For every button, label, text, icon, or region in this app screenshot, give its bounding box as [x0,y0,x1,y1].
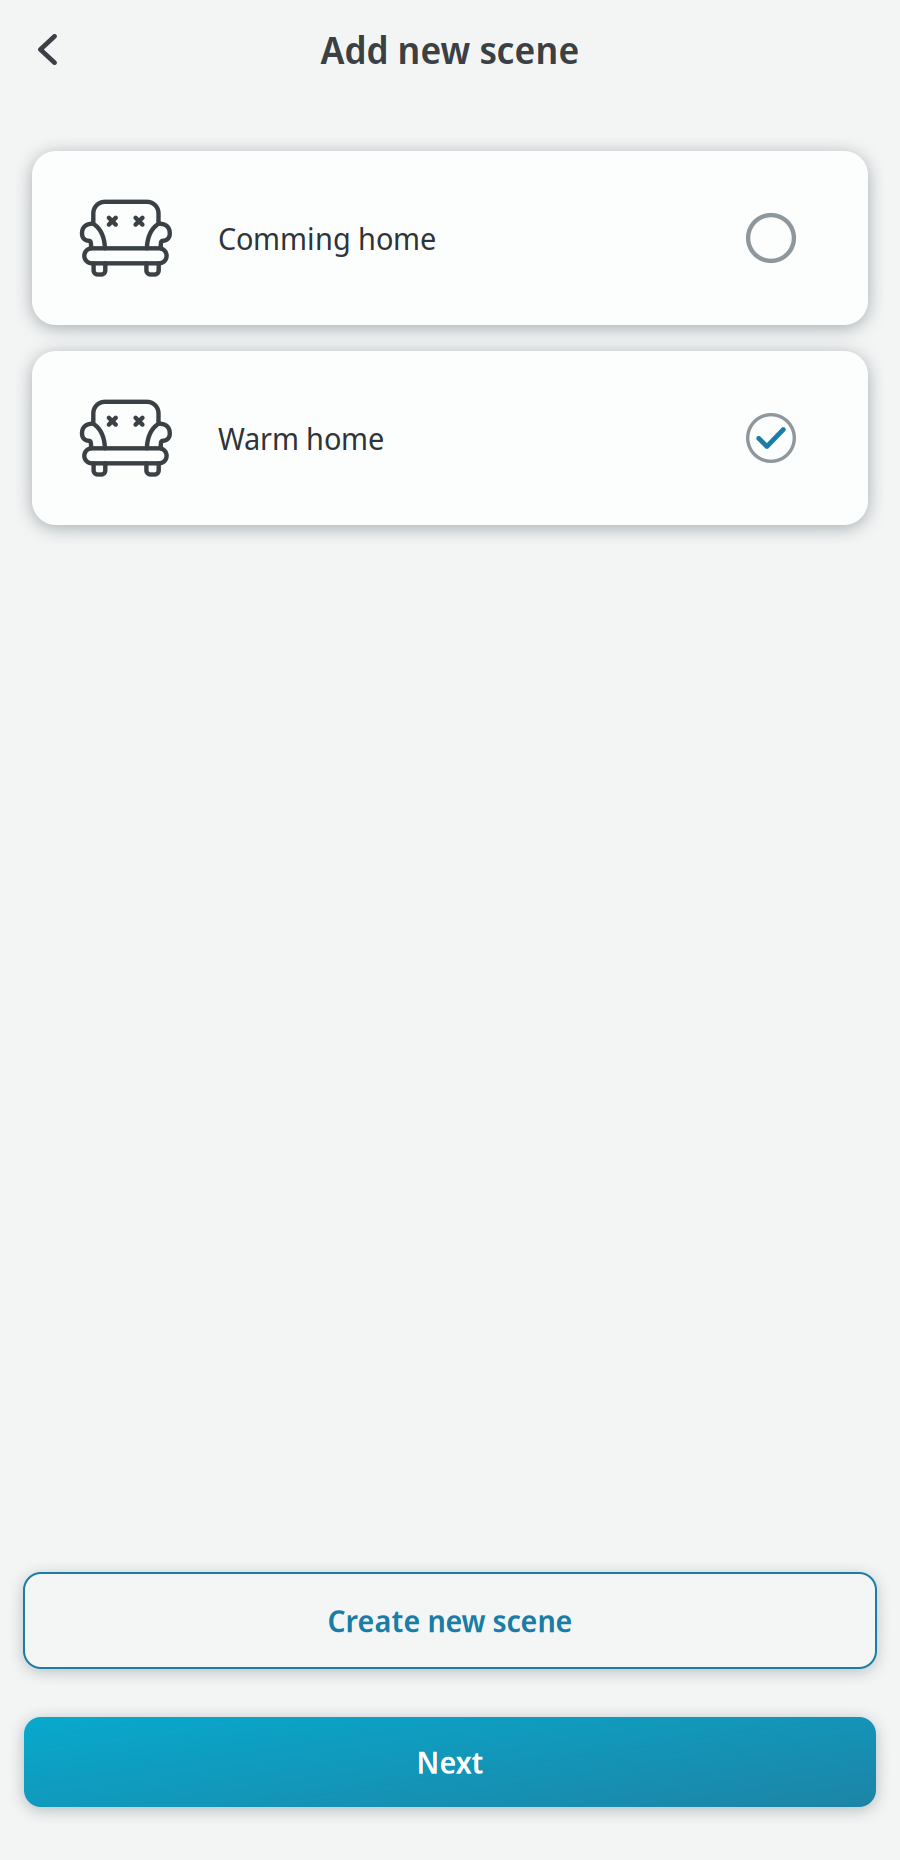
button[interactable]: Comming home [32,151,868,325]
staticText: Comming home [218,217,436,259]
button[interactable]: Create new scene [24,1573,876,1668]
button[interactable]: Warm home [32,351,868,525]
staticText: Warm home [218,417,384,459]
staticText: Create new scene [327,1600,572,1641]
staticText: Add new scene [320,24,579,75]
staticText: Next [416,1741,483,1782]
button[interactable]: Back [0,14,81,85]
button[interactable]: Next [24,1717,876,1807]
